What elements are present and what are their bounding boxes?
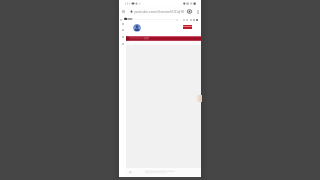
button[interactable]: Home bbox=[121, 9, 126, 14]
button[interactable]: Search bbox=[182, 18, 185, 21]
button[interactable]: Tabs bbox=[186, 8, 193, 15]
button[interactable]: Channel avatar bbox=[133, 24, 141, 32]
button[interactable]: YouTube bbox=[124, 17, 133, 21]
button[interactable]: Account bbox=[195, 18, 198, 21]
staticText: youtube.com/channel/UCqHK bbox=[134, 9, 185, 14]
button[interactable]: SUBSCRIBE bbox=[183, 25, 192, 29]
staticText: SUBSCRIBE bbox=[183, 25, 192, 29]
button[interactable]: Home bbox=[119, 21, 126, 26]
button[interactable]: Cast bbox=[175, 18, 178, 21]
button[interactable]: Trending bbox=[119, 27, 126, 32]
button[interactable]: Guide bbox=[119, 18, 123, 22]
button[interactable]: Voice search bbox=[185, 18, 188, 21]
button[interactable]: Subscriptions bbox=[119, 34, 126, 39]
button[interactable]: Library bbox=[119, 41, 126, 46]
button[interactable]: Notifications bbox=[192, 18, 195, 21]
button[interactable]: More options bbox=[195, 9, 200, 14]
button[interactable]: Create bbox=[189, 18, 192, 21]
